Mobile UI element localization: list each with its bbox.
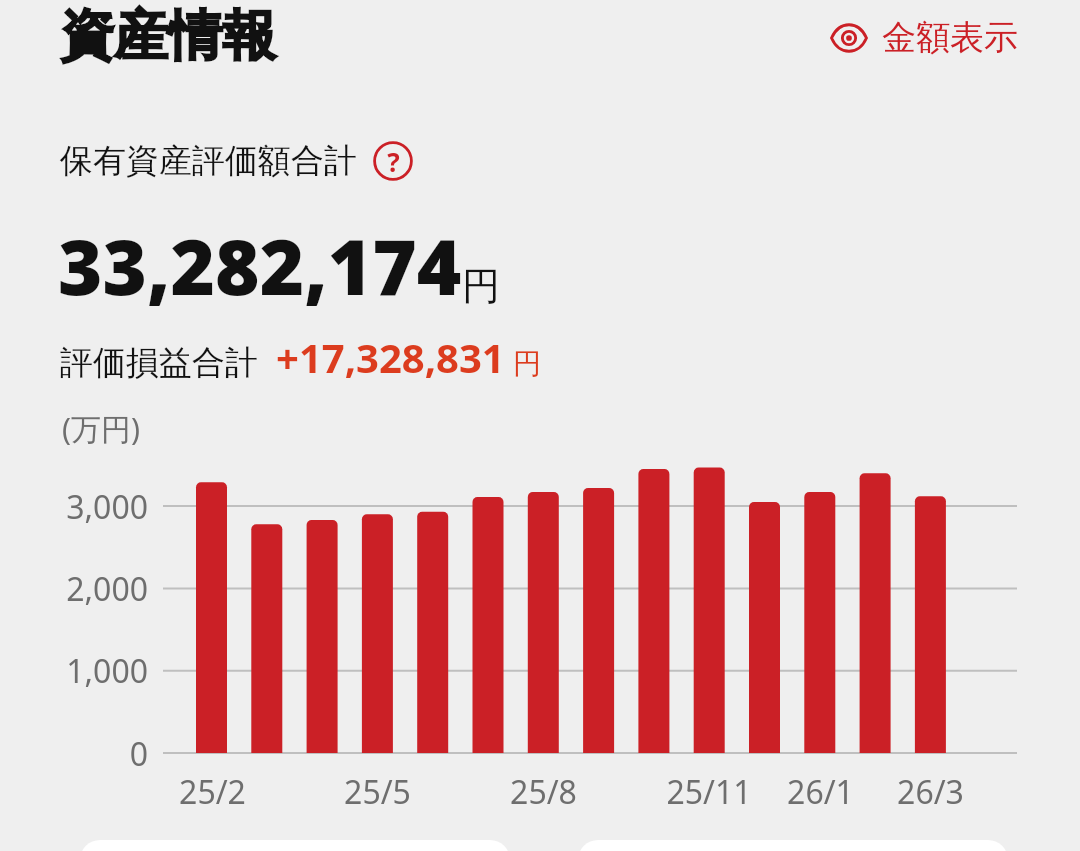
staticText: 0 bbox=[129, 732, 148, 776]
staticText: ? bbox=[387, 144, 400, 179]
staticText: +17,328,831 bbox=[276, 330, 505, 384]
staticText: 1,000 bbox=[66, 649, 148, 693]
button[interactable]: 金額表示 bbox=[826, 12, 1022, 63]
staticText: 25/8 bbox=[510, 770, 577, 814]
other: 金額表示 bbox=[830, 19, 868, 57]
other: ヘルプ bbox=[373, 141, 413, 181]
staticText: 26/3 bbox=[897, 770, 964, 814]
staticText: 円 bbox=[462, 262, 500, 310]
staticText: 保有資産評価額合計 bbox=[60, 140, 357, 182]
staticText: 3,000 bbox=[66, 485, 148, 529]
staticText: 26/1 bbox=[787, 770, 854, 814]
staticText: 資産情報 bbox=[60, 2, 276, 70]
button[interactable]: 保有資産評価額合計 bbox=[60, 140, 413, 182]
staticText: 33,282,174 bbox=[58, 214, 462, 318]
staticText: 円 bbox=[513, 346, 541, 381]
staticText: 25/11 bbox=[666, 770, 752, 814]
staticText: 25/2 bbox=[179, 770, 246, 814]
staticText: 評価損益合計 bbox=[60, 342, 258, 384]
staticText: 金額表示 bbox=[882, 16, 1018, 59]
staticText: 2,000 bbox=[66, 567, 148, 611]
staticText: (万円) bbox=[62, 408, 140, 449]
staticText: 25/5 bbox=[344, 770, 411, 814]
